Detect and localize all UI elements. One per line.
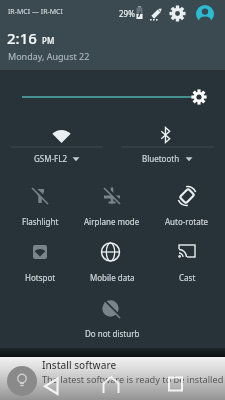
staticText: Auto-rotate	[165, 216, 209, 227]
staticText: Hotspot	[25, 272, 56, 283]
button[interactable]	[148, 4, 166, 22]
button[interactable]: Airplane mode	[74, 182, 150, 238]
staticText: Bluetooth	[142, 153, 180, 164]
button[interactable]: Mobile data	[74, 238, 150, 294]
button[interactable]: Cast	[149, 238, 225, 294]
staticText: Do not disturb	[85, 328, 140, 339]
staticText: IR-MCI — IR-MCI	[8, 7, 63, 17]
staticText: 29%	[119, 8, 135, 19]
button[interactable]: Auto-rotate	[149, 182, 225, 238]
button[interactable]: GSM-FL2	[11, 122, 103, 168]
button[interactable]	[164, 374, 190, 400]
button[interactable]: Flashlight	[2, 182, 78, 238]
staticText: Cast	[179, 272, 196, 283]
staticText: GSM-FL2	[34, 153, 67, 164]
button[interactable]: Do not disturb	[74, 294, 150, 350]
button[interactable]	[38, 374, 66, 400]
staticText: 2:16	[7, 28, 37, 48]
staticText: Airplane mode	[84, 216, 140, 227]
button[interactable]	[169, 5, 186, 22]
button[interactable]: Hotspot	[2, 238, 78, 294]
staticText: Flashlight	[22, 216, 59, 227]
staticText: Install software	[42, 358, 117, 372]
staticText: Monday, August 22	[8, 50, 90, 62]
staticText: PM	[42, 35, 55, 46]
button[interactable]: Install software	[0, 357, 225, 400]
staticText: The latest software is ready to be insta…	[42, 373, 225, 386]
staticText: Mobile data	[90, 272, 135, 283]
button[interactable]	[14, 84, 214, 110]
button[interactable]: Bluetooth	[121, 122, 214, 168]
button[interactable]	[196, 5, 214, 23]
button[interactable]	[98, 374, 124, 400]
